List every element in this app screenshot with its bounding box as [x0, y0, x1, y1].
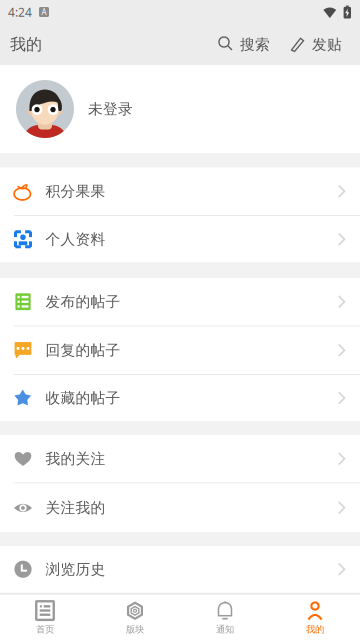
button[interactable]: 关注我的: [0, 483, 360, 532]
staticText: 回复的帖子: [45, 341, 120, 359]
button[interactable]: 发贴: [287, 24, 345, 65]
staticText: 我的: [10, 35, 42, 54]
staticText: 浏览历史: [45, 560, 105, 578]
staticText: 发贴: [312, 35, 342, 53]
staticText: 发布的帖子: [45, 293, 120, 311]
staticText: 我的关注: [45, 450, 105, 468]
staticText: 搜索: [240, 35, 270, 53]
button[interactable]: 我的关注: [0, 435, 360, 482]
staticText: 版块: [126, 623, 144, 635]
staticText: 关注我的: [45, 499, 105, 517]
staticText: A: [41, 7, 46, 17]
staticText: 通知: [216, 623, 234, 635]
button[interactable]: 版块: [90, 594, 180, 640]
staticText: 首页: [36, 623, 54, 635]
button[interactable]: 发布的帖子: [0, 278, 360, 325]
button[interactable]: 首页: [0, 594, 90, 640]
staticText: 积分果果: [45, 182, 105, 200]
button[interactable]: 我的: [270, 594, 360, 640]
button[interactable]: 回复的帖子: [0, 326, 360, 374]
button[interactable]: 积分果果: [0, 167, 360, 215]
staticText: 个人资料: [45, 230, 105, 248]
staticText: 未登录: [88, 100, 133, 118]
button[interactable]: 通知: [180, 594, 270, 640]
staticText: 收藏的帖子: [45, 389, 120, 407]
button[interactable]: 未登录: [0, 65, 360, 153]
staticText: 4:24: [8, 4, 32, 20]
button[interactable]: 搜索: [216, 24, 273, 65]
button[interactable]: 浏览历史: [0, 546, 360, 592]
button[interactable]: 收藏的帖子: [0, 375, 360, 421]
button[interactable]: 个人资料: [0, 216, 360, 262]
staticText: 我的: [306, 623, 324, 635]
